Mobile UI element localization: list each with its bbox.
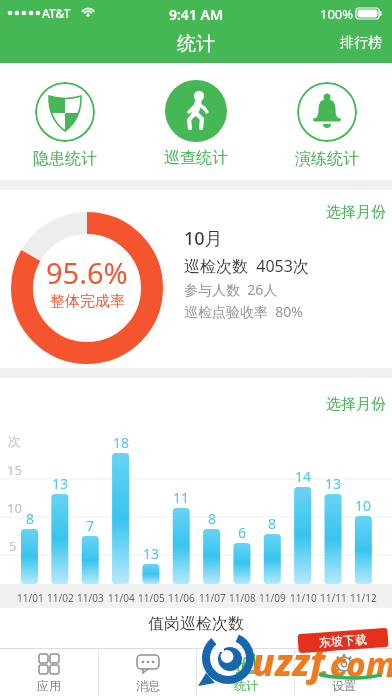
staticText: .com — [320, 642, 392, 687]
button[interactable]: 选择月份 — [320, 389, 392, 420]
staticText: 11/11 — [320, 591, 347, 605]
staticText: 11/03 — [77, 591, 104, 605]
staticText: 巡检点验收率 80% — [184, 302, 303, 321]
staticText: 选择月份 — [326, 203, 386, 222]
staticText: 11 — [173, 488, 190, 507]
button[interactable]: 巡查统计 — [130, 63, 261, 180]
staticText: 8 — [26, 509, 35, 528]
staticText: AT&T — [42, 5, 71, 21]
staticText: 11/07 — [199, 591, 226, 605]
staticText: 11/01 — [17, 591, 44, 605]
staticText: 14 — [295, 467, 312, 486]
staticText: 13 — [325, 474, 342, 493]
button[interactable]: 应用 — [0, 648, 98, 696]
staticText: 8 — [208, 509, 217, 528]
button[interactable]: 隐患统计 — [0, 63, 130, 180]
staticText: 10 — [7, 499, 22, 517]
staticText: 值岗巡检次数 — [148, 614, 244, 634]
staticText: 11/08 — [229, 591, 256, 605]
staticText: 统计 — [234, 678, 258, 693]
staticText: 11/06 — [168, 591, 195, 605]
button[interactable]: 排行榜 — [330, 30, 392, 56]
button[interactable]: 演练统计 — [261, 63, 392, 180]
staticText: 次 — [8, 433, 21, 449]
staticText: 整体完成率 — [50, 292, 125, 311]
button[interactable]: 设置 — [295, 648, 392, 696]
staticText: 消息 — [136, 678, 160, 693]
button[interactable]: 统计 — [197, 648, 294, 696]
staticText: 8 — [268, 514, 277, 533]
staticText: 9:41 AM — [169, 5, 223, 24]
staticText: 10 — [355, 496, 372, 515]
staticText: 参与人数 26人 — [184, 280, 278, 299]
staticText: 15 — [7, 461, 22, 479]
staticText: 东坡下载 — [318, 631, 367, 650]
staticText: 100% — [320, 5, 354, 23]
staticText: 隐患统计 — [33, 149, 97, 169]
staticText: 13 — [52, 474, 69, 493]
button[interactable]: 消息 — [99, 648, 196, 696]
button[interactable]: 选择月份 — [320, 197, 392, 228]
staticText: 排行榜 — [340, 34, 382, 52]
staticText: 巡查统计 — [164, 148, 228, 168]
staticText: uzzf — [252, 636, 325, 686]
staticText: 11/10 — [290, 591, 317, 605]
button[interactable]: 选择月份 — [0, 190, 392, 368]
staticText: 应用 — [37, 678, 61, 693]
staticText: 95.6% — [46, 253, 128, 292]
staticText: 11/12 — [350, 591, 377, 605]
staticText: 5 — [9, 537, 17, 555]
staticText: 选择月份 — [326, 395, 386, 414]
staticText: 统计 — [177, 32, 215, 56]
staticText: 设置 — [332, 678, 356, 693]
staticText: 演练统计 — [295, 149, 359, 169]
staticText: 10月 — [184, 226, 223, 251]
staticText: 巡检次数 4053次 — [184, 255, 309, 277]
staticText: 13 — [143, 544, 160, 563]
staticText: 11/04 — [108, 591, 135, 605]
staticText: 7 — [86, 516, 95, 535]
staticText: 11/09 — [259, 591, 286, 605]
staticText: 6 — [238, 523, 247, 542]
staticText: 11/05 — [138, 591, 165, 605]
staticText: 11/02 — [47, 591, 74, 605]
staticText: 18 — [113, 433, 130, 452]
